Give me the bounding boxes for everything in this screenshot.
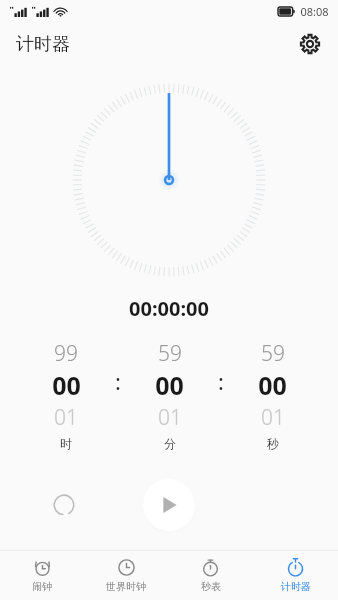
staticText: 闹钟: [32, 580, 52, 593]
staticText: 08:08: [300, 4, 329, 19]
button[interactable]: 计时器: [253, 551, 338, 600]
staticText: 99: [54, 339, 78, 368]
button[interactable]: 闹钟: [0, 551, 84, 600]
staticText: 00: [52, 368, 81, 402]
button[interactable]: 59: [128, 338, 211, 454]
staticText: 59: [261, 339, 285, 368]
staticText: 秒表: [201, 580, 221, 593]
staticText: 分: [164, 436, 176, 451]
staticText: 01: [261, 403, 285, 432]
staticText: :: [218, 366, 224, 396]
staticText: 00:00:00: [129, 295, 209, 322]
staticText: 计时器: [281, 580, 311, 593]
button[interactable]: 秒表: [168, 551, 253, 600]
button[interactable]: 99: [24, 338, 108, 454]
staticText: 世界时钟: [106, 580, 146, 593]
button[interactable]: Settings: [292, 26, 328, 62]
staticText: 时: [60, 436, 72, 451]
button[interactable]: Start: [143, 479, 195, 531]
staticText: 59: [158, 339, 182, 368]
button[interactable]: 世界时钟: [84, 551, 168, 600]
staticText: 秒: [267, 436, 279, 451]
staticText: 01: [158, 403, 182, 432]
button[interactable]: 59: [231, 338, 314, 454]
staticText: 00: [155, 368, 184, 402]
staticText: 计时器: [16, 33, 70, 56]
button[interactable]: Reset: [43, 484, 85, 526]
staticText: :: [115, 366, 121, 396]
staticText: 01: [54, 403, 78, 432]
staticText: 00: [258, 368, 287, 402]
